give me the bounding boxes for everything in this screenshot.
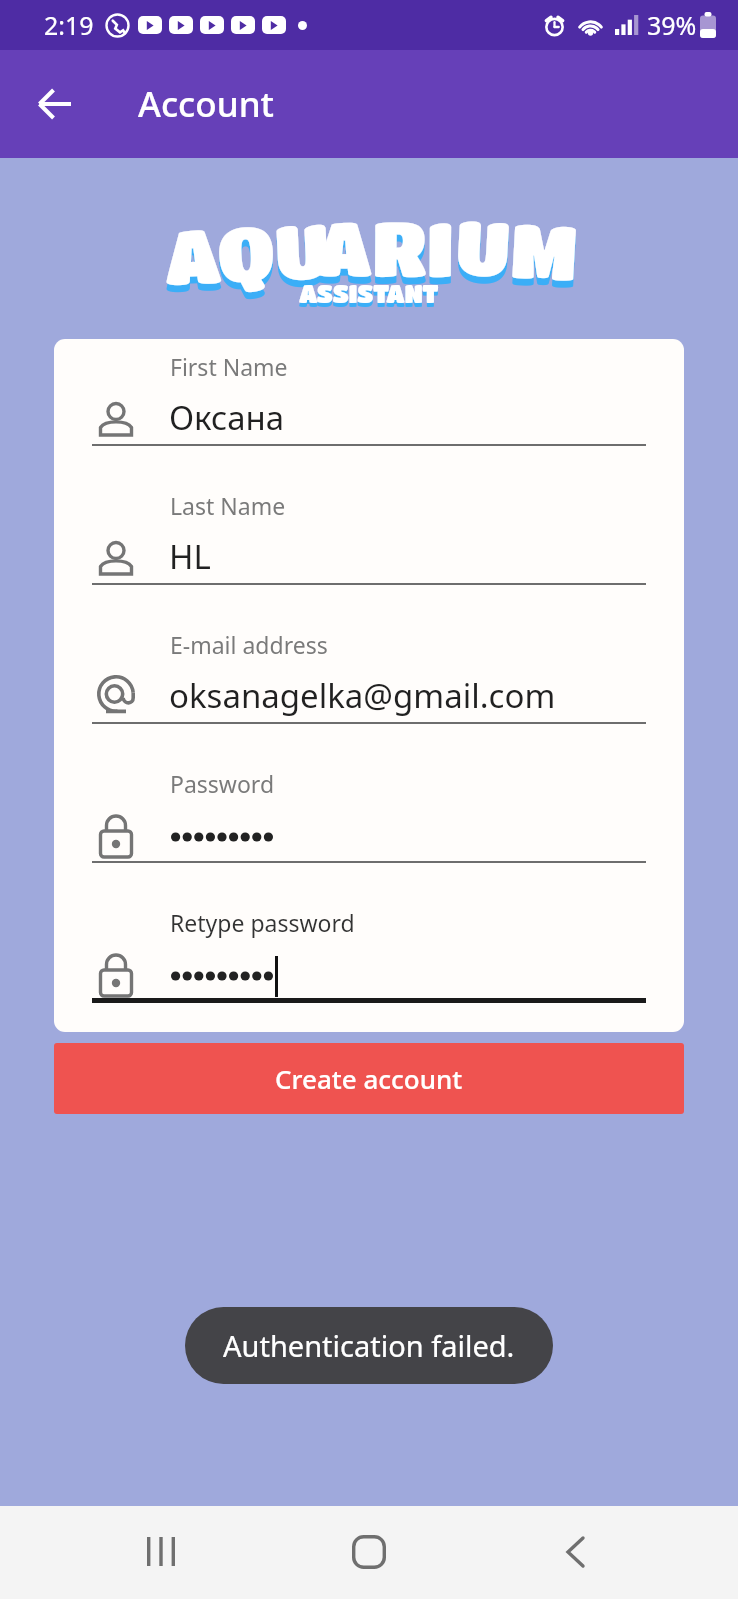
staticText: AQU [163,204,331,299]
staticText: oksanagelka@gmail.com [169,673,556,718]
button[interactable]: Home [296,1506,442,1599]
staticText: Authentication failed. [223,1326,515,1365]
staticText: UM [453,208,581,301]
staticText: ARI [316,209,454,297]
staticText: Password [170,768,275,799]
staticText: ASSISTANT [299,279,439,308]
staticText: Оксана [169,395,285,440]
staticText: First Name [170,351,288,382]
button[interactable]: Back [10,50,100,158]
staticText: UM [453,201,581,294]
button[interactable]: Back [502,1506,648,1599]
staticText: AQU [163,211,331,306]
staticText: ASSISTANT [299,283,439,312]
staticText: Account [138,80,274,128]
staticText: E-mail address [170,629,328,660]
staticText: ARI [316,202,454,290]
staticText: Last Name [170,490,286,521]
staticText: Retype password [170,907,355,938]
staticText: 2:19 [44,8,94,42]
staticText: 39% [647,8,697,42]
button[interactable]: Recent apps [88,1506,234,1599]
button[interactable]: Create account [54,1043,684,1114]
staticText: Create account [275,1061,463,1096]
staticText: HL [169,534,211,579]
